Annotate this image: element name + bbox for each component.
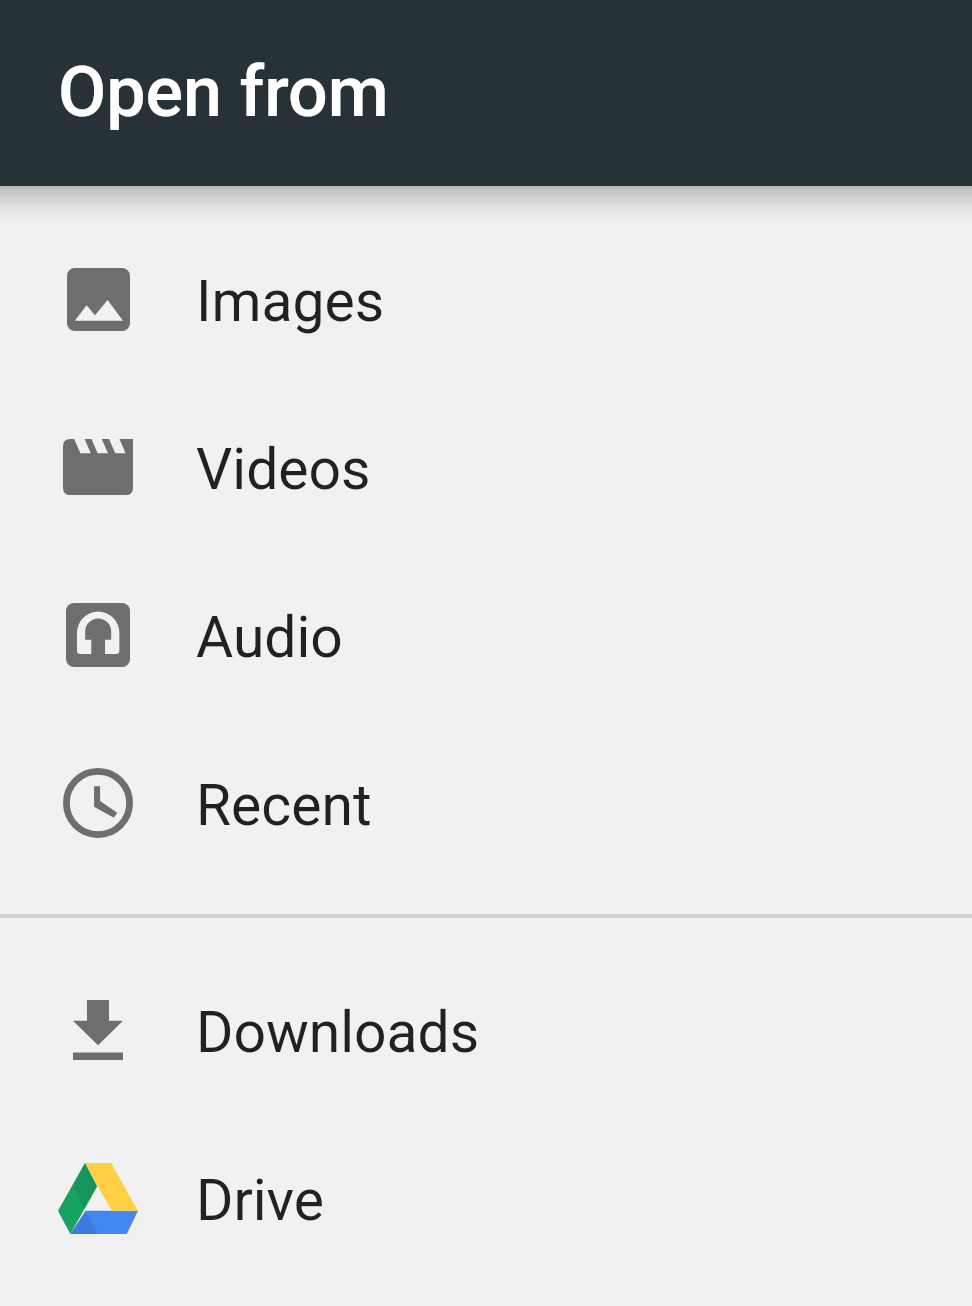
staticText: Downloads: [196, 999, 480, 1066]
other: Recent: [63, 768, 133, 838]
other: Images: [67, 268, 130, 331]
staticText: Recent: [196, 772, 372, 839]
staticText: Audio: [196, 604, 343, 671]
button[interactable]: Videos: [0, 383, 972, 551]
staticText: Open from: [58, 51, 389, 133]
staticText: Images: [196, 268, 385, 335]
other: Videos: [63, 439, 133, 495]
other: Audio: [66, 603, 130, 667]
staticText: Drive: [196, 1167, 325, 1234]
other: Drive: [58, 1163, 138, 1234]
button[interactable]: Downloads: [0, 946, 972, 1114]
button[interactable]: Recent: [0, 719, 972, 887]
button[interactable]: Drive: [0, 1114, 972, 1282]
other: Downloads: [73, 1000, 123, 1060]
button[interactable]: Audio: [0, 551, 972, 719]
staticText: Videos: [196, 436, 371, 503]
button[interactable]: Images: [0, 215, 972, 383]
